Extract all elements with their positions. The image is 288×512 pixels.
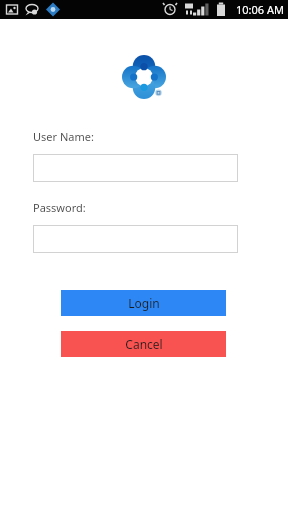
- button[interactable]: Cancel: [61, 331, 226, 357]
- staticText: User Name:: [33, 129, 94, 144]
- button[interactable]: [33, 225, 238, 253]
- staticText: Cancel: [125, 336, 163, 352]
- staticText: Login: [128, 295, 160, 311]
- staticText: 10:06 AM: [236, 2, 284, 17]
- staticText: Password:: [33, 200, 86, 215]
- button[interactable]: Login: [61, 290, 226, 316]
- button[interactable]: [33, 154, 238, 182]
